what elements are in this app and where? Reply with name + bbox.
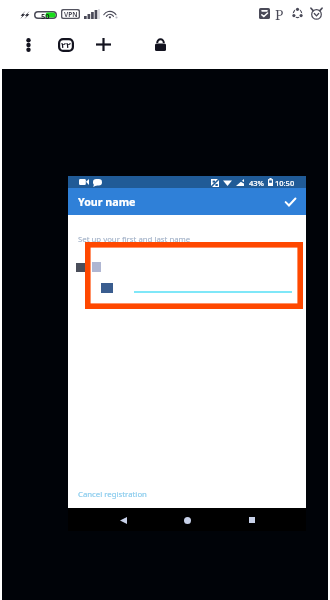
staticText: 10:50 [275,178,295,188]
staticText: VPN [64,10,78,19]
staticText: ٢٢ [61,41,71,50]
button[interactable]: Secure connection [148,33,172,57]
staticText: 43% [249,178,264,188]
button[interactable]: New tab [92,33,115,56]
button[interactable]: Tabs [54,33,78,57]
button[interactable]: Home [177,510,197,530]
button[interactable]: Back [113,510,133,530]
staticText: 50 [41,11,50,19]
staticText: Your name [78,195,136,210]
staticText: P [275,5,284,24]
button[interactable]: More options [16,33,40,57]
button[interactable]: Cancel registration [78,489,147,500]
button[interactable]: Recents [242,510,262,530]
button[interactable]: Confirm [280,192,300,212]
staticText: Set up your first and last name [78,234,191,245]
